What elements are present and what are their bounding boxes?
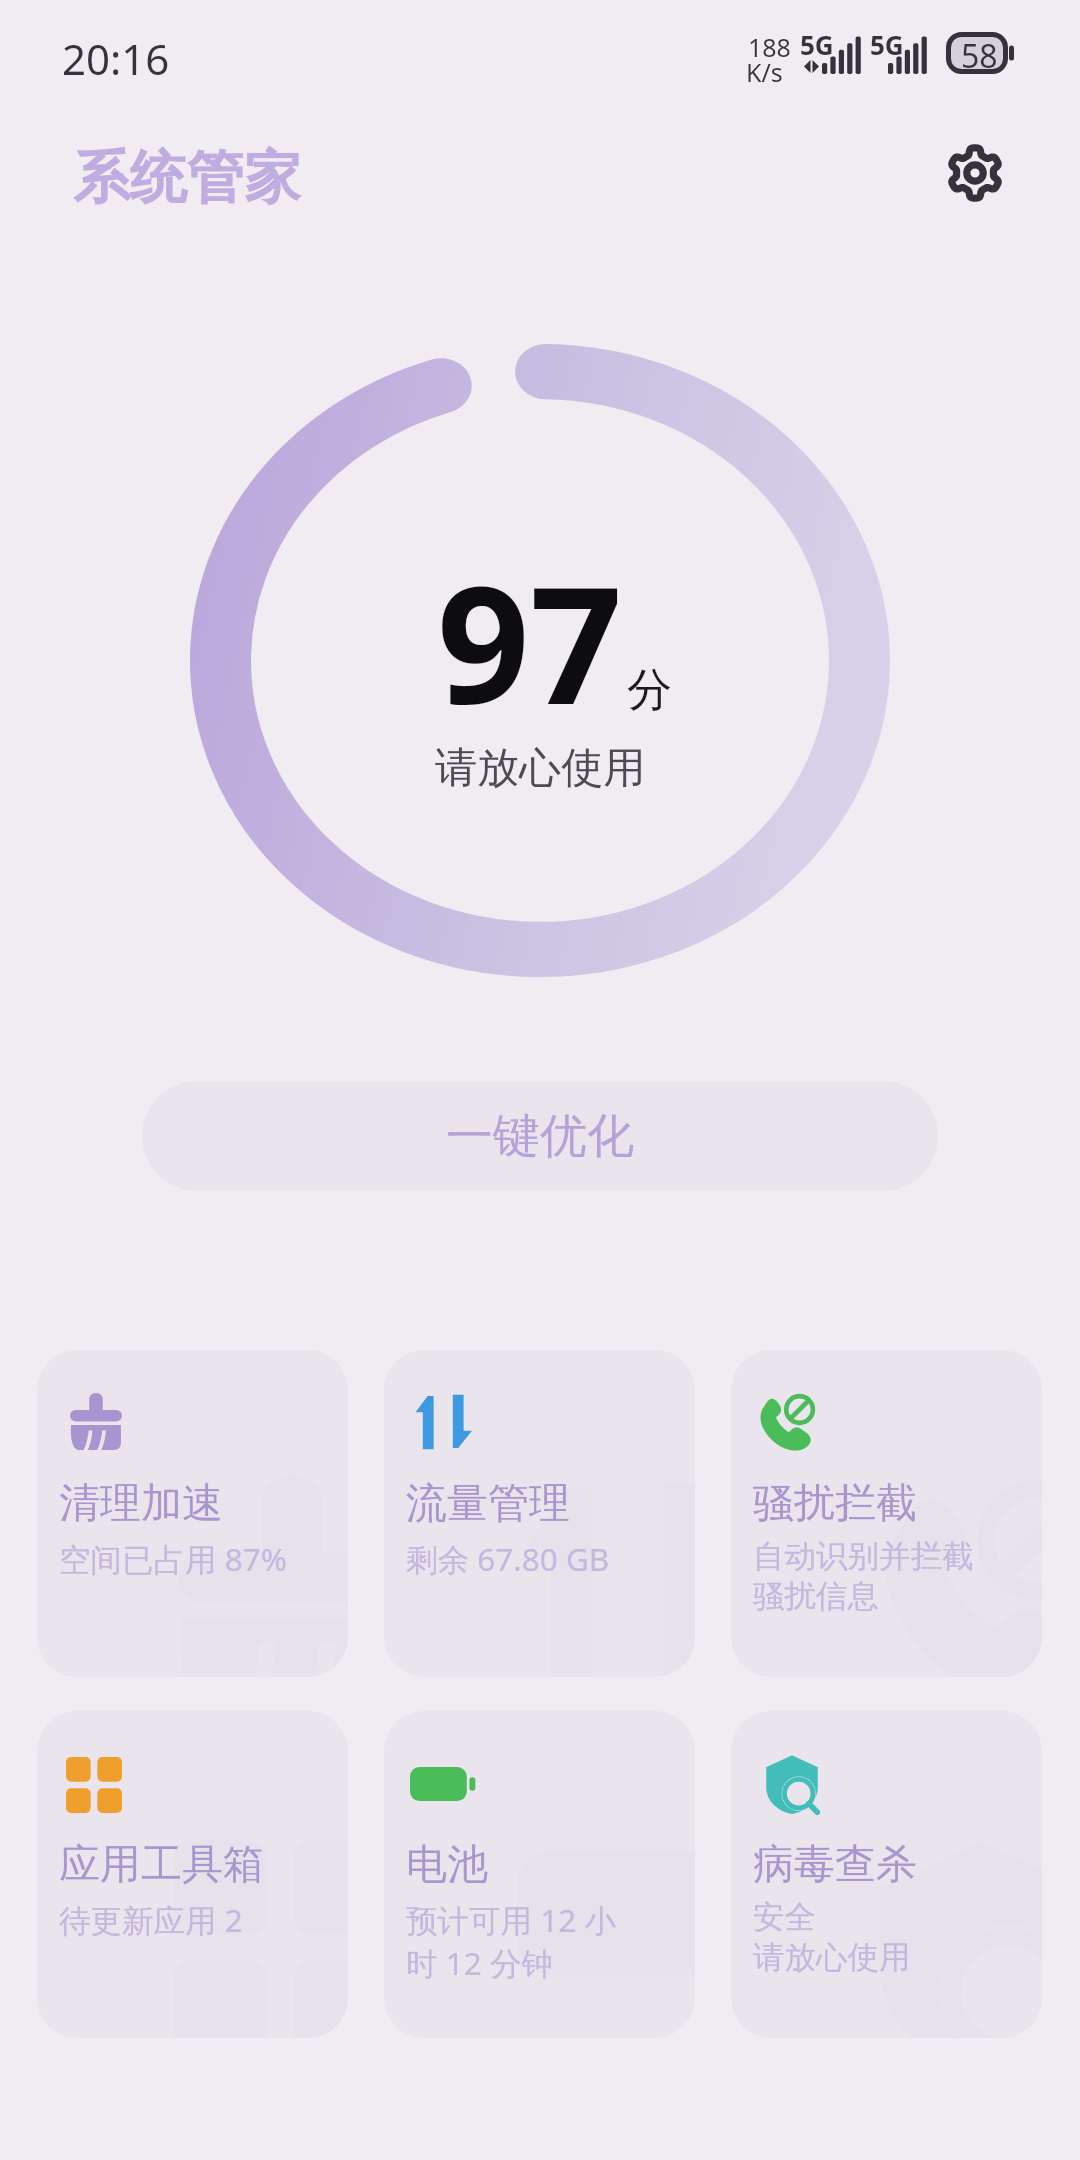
staticText: 应用工具箱 [59, 1839, 264, 1891]
staticText: 骚扰信息 [753, 1577, 879, 1617]
staticText: 分 [627, 662, 672, 719]
staticText: K/s [746, 55, 783, 89]
staticText: 预计可用 12 小 [406, 1898, 616, 1941]
staticText: 电池 [406, 1839, 488, 1891]
button[interactable]: 清理加速 [37, 1350, 348, 1677]
staticText: 20:16 [62, 30, 170, 87]
staticText: 一键优化 [446, 1107, 634, 1166]
staticText: 系统管家 [73, 142, 301, 214]
button[interactable]: 电池 [384, 1711, 695, 2038]
staticText: 病毒查杀 [753, 1839, 917, 1891]
staticText: 骚扰拦截 [753, 1478, 917, 1530]
staticText: 安全 [753, 1898, 816, 1938]
staticText: 请放心使用 [435, 742, 645, 795]
button[interactable]: Settings [936, 134, 1014, 212]
staticText: 188 [748, 30, 791, 64]
button[interactable]: 病毒查杀 [731, 1711, 1042, 2038]
button[interactable]: 流量管理 [384, 1350, 695, 1677]
button[interactable]: 应用工具箱 [37, 1711, 348, 2038]
staticText: 清理加速 [59, 1478, 223, 1530]
button[interactable]: 骚扰拦截 [731, 1350, 1042, 1677]
button[interactable]: 一键优化 [142, 1081, 938, 1191]
staticText: 5G [800, 27, 834, 62]
staticText: 58 [961, 34, 998, 78]
staticText: 自动识别并拦截 [753, 1537, 974, 1577]
staticText: 时 12 分钟 [406, 1941, 553, 1984]
staticText: 空间已占用 87% [59, 1537, 287, 1580]
staticText: 待更新应用 2 [59, 1898, 243, 1941]
staticText: 流量管理 [406, 1478, 570, 1530]
staticText: 97 [437, 531, 623, 752]
staticText: 剩余 67.80 GB [406, 1537, 610, 1580]
staticText: 5G [870, 27, 904, 62]
staticText: 请放心使用 [753, 1938, 911, 1978]
